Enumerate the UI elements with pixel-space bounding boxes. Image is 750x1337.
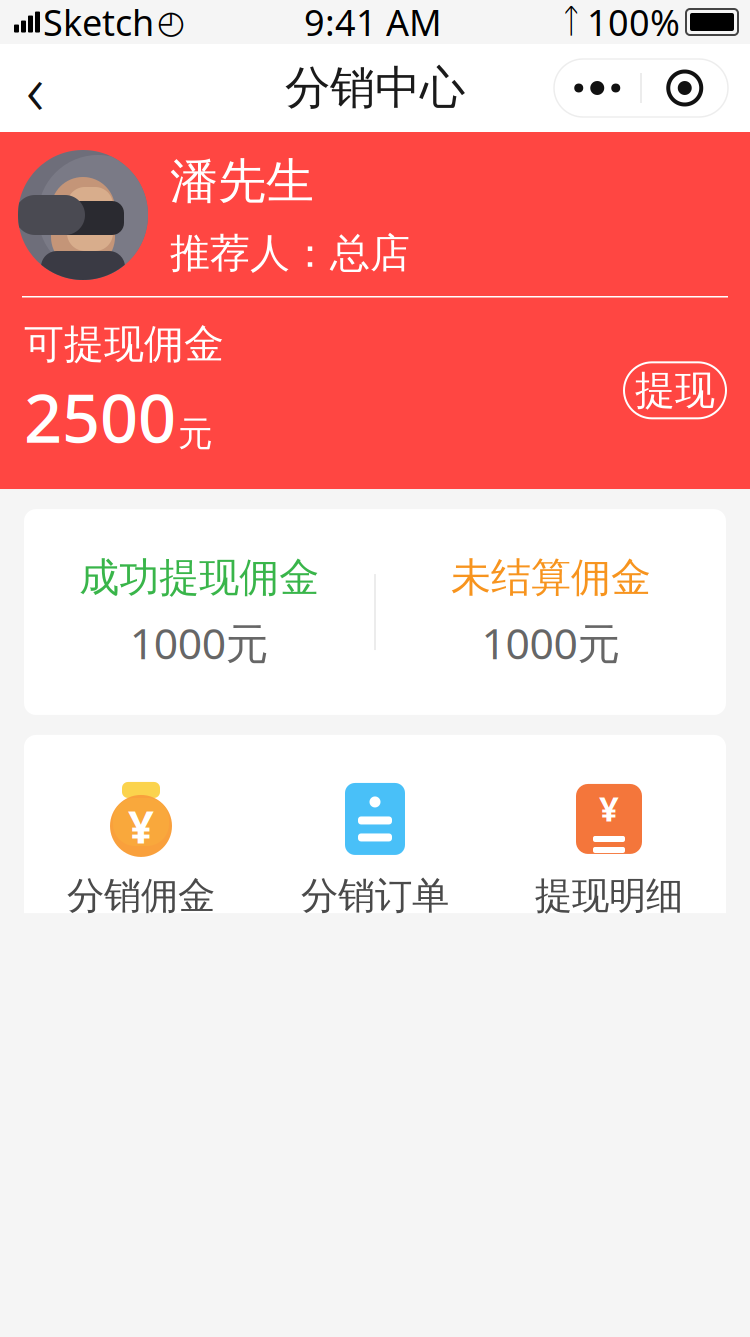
button[interactable]: ¥ bbox=[492, 777, 726, 975]
staticText: ◴ bbox=[157, 4, 185, 40]
staticText: 提现明细 bbox=[535, 873, 683, 919]
button[interactable]: 分销订单 bbox=[258, 777, 492, 975]
staticText: 可提现佣金 bbox=[24, 319, 224, 369]
staticText: 推荐人：总店 bbox=[170, 229, 410, 278]
staticText: ᛏ bbox=[561, 6, 581, 38]
staticText: 1000元 bbox=[481, 614, 620, 671]
button[interactable]: 提现 bbox=[624, 362, 726, 418]
button[interactable]: Close bbox=[642, 59, 728, 117]
button[interactable]: 未结算佣金 bbox=[376, 509, 726, 715]
staticText: 元 bbox=[178, 413, 213, 455]
staticText: 提现 bbox=[635, 366, 715, 415]
button[interactable]: Back bbox=[0, 58, 70, 118]
staticText: 100% bbox=[587, 0, 680, 46]
staticText: 2500 bbox=[24, 373, 176, 461]
staticText: 分销中心 bbox=[285, 60, 465, 116]
button[interactable]: More bbox=[554, 59, 640, 117]
staticText: Sketch bbox=[43, 0, 154, 46]
staticText: 分销订单 bbox=[301, 873, 449, 919]
staticText: 1000元 bbox=[130, 614, 269, 671]
staticText: ¥ bbox=[128, 796, 154, 856]
button[interactable]: ¥ bbox=[24, 777, 258, 975]
staticText: 未结算佣金 bbox=[451, 553, 651, 602]
staticText: 分销佣金 bbox=[67, 873, 215, 919]
staticText: ‹ bbox=[26, 42, 44, 134]
button[interactable]: 成功提现佣金 bbox=[24, 509, 374, 715]
staticText: ¥ bbox=[599, 785, 619, 831]
staticText: 9:41 AM bbox=[304, 0, 442, 46]
staticText: 成功提现佣金 bbox=[79, 553, 319, 602]
staticText: 潘先生 bbox=[170, 152, 314, 211]
